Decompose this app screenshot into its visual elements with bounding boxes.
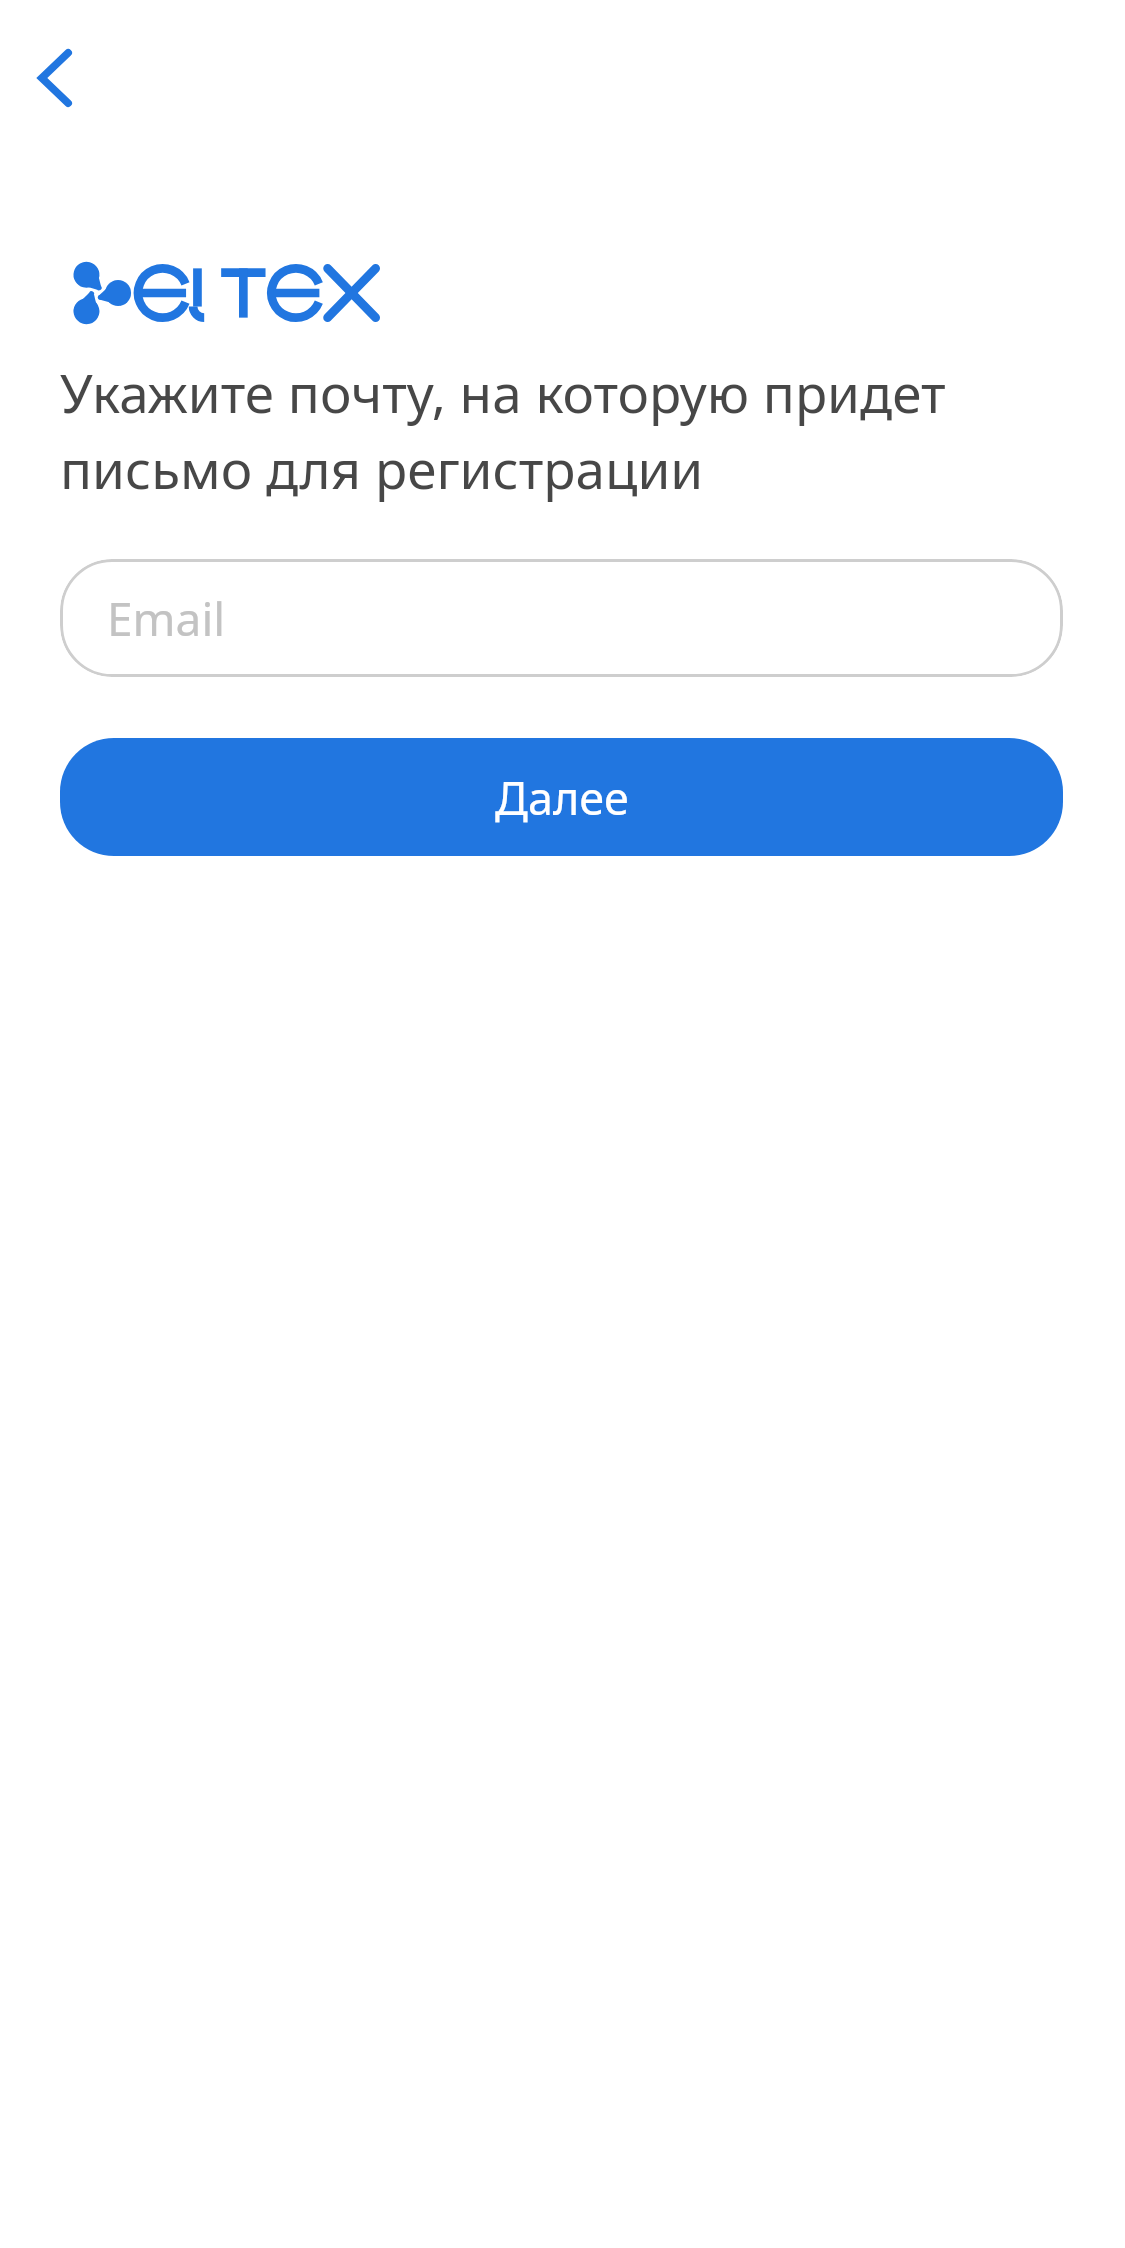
staticText: Email <box>107 587 226 650</box>
staticText: Далее <box>495 767 629 828</box>
button[interactable]: Email <box>60 559 1063 677</box>
button[interactable]: Далее <box>60 738 1063 856</box>
staticText: Укажите почту, на которую придет письмо … <box>60 356 1063 505</box>
button[interactable]: Back <box>0 26 110 130</box>
